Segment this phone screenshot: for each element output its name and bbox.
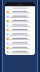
button[interactable]: List item 8 [5, 41, 35, 46]
button[interactable]: List item 2 [5, 15, 35, 19]
button[interactable]: List item 3 [5, 19, 35, 24]
button[interactable]: List item 5 [5, 28, 35, 32]
button[interactable]: List item 7 [5, 37, 35, 41]
button[interactable]: List item 10 [5, 50, 35, 55]
button[interactable]: Search [5, 6, 35, 10]
button[interactable]: List item 1 [5, 10, 35, 15]
button[interactable]: List item 9 [5, 46, 35, 50]
button[interactable]: List item 6 [5, 32, 35, 37]
button[interactable]: List item 4 [5, 23, 35, 28]
